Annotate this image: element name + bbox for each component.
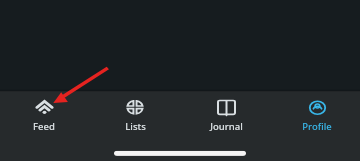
staticText: Lists xyxy=(125,122,146,133)
button[interactable]: Journal xyxy=(188,95,264,138)
button[interactable]: Feed xyxy=(6,95,82,138)
staticText: Feed xyxy=(33,122,55,133)
staticText: Journal xyxy=(210,122,243,133)
staticText: Profile xyxy=(302,122,332,133)
button[interactable]: Lists xyxy=(97,95,173,138)
button[interactable]: Profile xyxy=(279,95,355,138)
